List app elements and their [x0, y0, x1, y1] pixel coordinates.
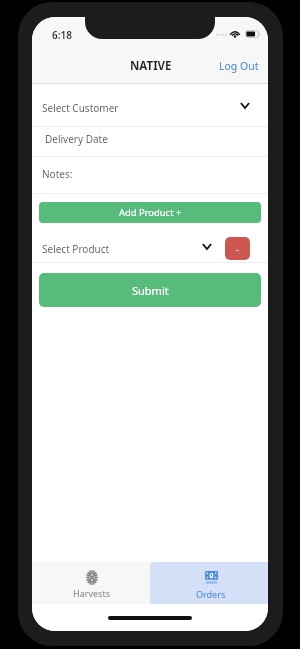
button[interactable]: Notes: — [32, 157, 268, 193]
staticText: NATIVE — [130, 58, 172, 74]
staticText: Submit — [132, 283, 169, 298]
staticText: Notes: — [42, 167, 73, 181]
staticText: Harvests — [73, 587, 110, 599]
button[interactable]: Log Out — [210, 55, 268, 79]
staticText: - — [236, 243, 239, 255]
staticText: Select Customer — [42, 101, 119, 115]
button[interactable]: Add Product + — [39, 202, 261, 223]
staticText: Orders — [196, 588, 226, 600]
button[interactable]: - — [225, 237, 250, 260]
button[interactable]: Submit — [39, 273, 261, 307]
staticText: Log Out — [219, 59, 259, 73]
staticText: Add Product + — [119, 206, 182, 219]
button[interactable]: Select Customer — [32, 84, 268, 126]
staticText: Delivery Date — [45, 132, 108, 146]
staticText: 6:18 — [52, 28, 72, 42]
button[interactable]: Harvests — [32, 562, 150, 604]
button[interactable]: Orders — [150, 562, 268, 604]
button[interactable]: Delivery Date — [32, 127, 268, 156]
staticText: Select Product — [42, 242, 110, 256]
